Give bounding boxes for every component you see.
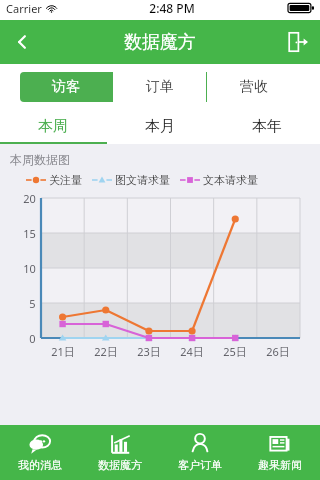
staticText: 23日	[137, 344, 161, 359]
staticText: 本周数据图	[10, 152, 70, 167]
staticText: 我的消息	[18, 458, 62, 472]
staticText: 10	[23, 261, 36, 276]
staticText: 客户订单	[178, 458, 222, 472]
staticText: 本年	[252, 117, 282, 136]
staticText: 15	[23, 226, 36, 241]
staticText: Carrier	[6, 1, 42, 16]
staticText: 本周	[38, 117, 68, 136]
button[interactable]: 本月	[106, 110, 213, 142]
staticText: 25日	[223, 344, 247, 359]
button[interactable]: 订单	[113, 72, 206, 102]
button[interactable]: 趣果新闻	[240, 425, 320, 480]
button[interactable]: 客户订单	[160, 425, 240, 480]
staticText: 趣果新闻	[258, 458, 302, 472]
button[interactable]: 我的消息	[0, 425, 80, 480]
staticText: 数据魔方	[98, 458, 142, 472]
staticText: 2:48 PM	[149, 0, 195, 16]
staticText: 访客	[52, 78, 80, 96]
staticText: 22日	[94, 344, 118, 359]
staticText: 订单	[146, 78, 174, 96]
button[interactable]: Logout	[276, 20, 320, 64]
staticText: 0	[29, 331, 36, 346]
staticText: 20	[23, 191, 36, 206]
button[interactable]: 本年	[213, 110, 320, 142]
staticText: 24日	[180, 344, 204, 359]
staticText: 21日	[51, 344, 75, 359]
button[interactable]: 访客	[20, 72, 112, 102]
staticText: 营收	[240, 78, 268, 96]
staticText: 关注量	[49, 173, 82, 187]
staticText: 文本请求量	[203, 173, 258, 187]
staticText: 26日	[266, 344, 290, 359]
button[interactable]: 本周	[0, 110, 106, 142]
staticText: 数据魔方	[124, 31, 196, 54]
staticText: 本月	[145, 117, 175, 136]
button[interactable]: Back	[0, 20, 44, 64]
staticText: 图文请求量	[115, 173, 170, 187]
staticText: 5	[29, 296, 36, 311]
button[interactable]: 营收	[207, 72, 300, 102]
button[interactable]: 数据魔方	[80, 425, 160, 480]
